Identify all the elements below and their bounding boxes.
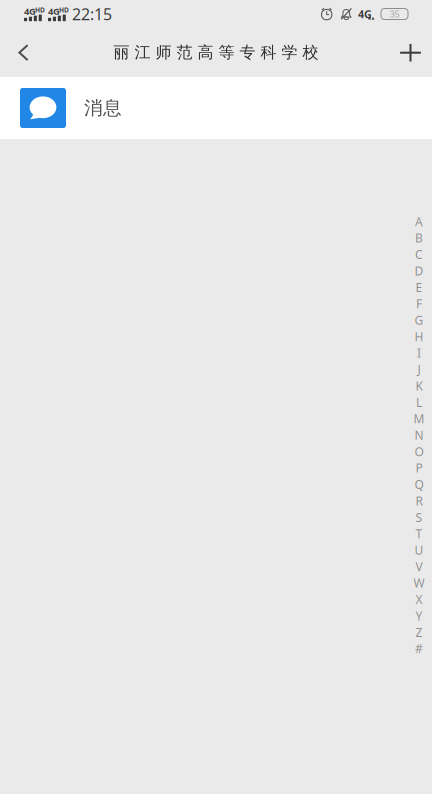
staticText: HD — [35, 6, 45, 14]
staticText: B — [415, 230, 423, 246]
staticText: P — [415, 460, 422, 476]
staticText: Q — [414, 476, 423, 492]
staticText: A — [415, 213, 423, 229]
staticText: F — [416, 296, 422, 312]
staticText: D — [414, 263, 423, 279]
staticText: 丽江师范高等专科学校 — [113, 43, 318, 62]
button[interactable]: Back — [0, 28, 47, 77]
staticText: M — [413, 411, 424, 427]
staticText: H — [414, 328, 423, 344]
staticText: W — [413, 575, 424, 591]
staticText: 4G — [358, 7, 372, 21]
staticText: R — [415, 493, 422, 509]
staticText: X — [415, 591, 422, 607]
staticText: L — [416, 394, 422, 410]
button[interactable]: Add — [389, 28, 432, 77]
staticText: N — [414, 427, 423, 443]
staticText: T — [415, 526, 422, 542]
staticText: 22:15 — [72, 3, 112, 25]
staticText: HD — [59, 6, 69, 14]
staticText: 35 — [389, 8, 399, 20]
staticText: C — [415, 246, 423, 262]
staticText: S — [415, 509, 422, 525]
staticText: 消息 — [84, 96, 122, 119]
staticText: O — [414, 444, 423, 459]
staticText: E — [415, 279, 422, 295]
staticText: V — [415, 559, 422, 574]
staticText: U — [414, 542, 423, 558]
staticText: 4G — [48, 5, 60, 17]
staticText: K — [415, 378, 422, 394]
staticText: J — [417, 361, 420, 377]
staticText: 4G — [24, 5, 36, 17]
staticText: I — [417, 345, 421, 361]
staticText: # — [415, 641, 423, 657]
staticText: Z — [415, 624, 422, 640]
button[interactable]: 消息 — [0, 77, 432, 139]
staticText: Y — [415, 608, 422, 624]
staticText: G — [414, 312, 423, 328]
